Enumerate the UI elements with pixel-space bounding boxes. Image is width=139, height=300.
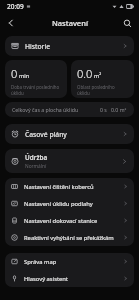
button[interactable]: Údržba — [5, 149, 134, 173]
staticText: Oblast posledního úklidu — [77, 84, 115, 96]
staticText: 0.0 — [77, 66, 93, 81]
staticText: Nastavení čištění koberců — [24, 183, 94, 191]
staticText: 0.0 m² — [111, 106, 127, 113]
staticText: Nastavení dokovací stanice — [24, 217, 98, 225]
staticText: Správa map — [24, 258, 57, 266]
staticText: Normální — [25, 163, 47, 170]
button[interactable]: Nastavení čištění koberců — [5, 178, 134, 195]
button[interactable]: Celkový čas a plocha úklidu — [5, 102, 134, 117]
button[interactable]: Historie — [5, 36, 134, 56]
staticText: Historie — [25, 42, 51, 51]
button[interactable]: Správa map — [5, 253, 134, 270]
staticText: Reaktivní vyhýbání se překážkám — [24, 234, 114, 242]
staticText: Nastavení — [52, 18, 88, 28]
staticText: m² — [94, 72, 102, 80]
staticText: 0 s — [100, 106, 107, 113]
staticText: Hlasový asistent — [24, 275, 68, 283]
staticText: Časové plány — [25, 130, 67, 139]
button[interactable]: Reaktivní vyhýbání se překážkám — [5, 229, 134, 246]
staticText: Doba trvání posledního úklidu — [11, 84, 60, 96]
button[interactable]: Search — [118, 14, 136, 32]
staticText: Nastavení úklidu podlahy — [24, 200, 93, 208]
button[interactable]: Hlasový asistent — [5, 270, 134, 287]
staticText: min — [19, 72, 30, 80]
staticText: 0 — [11, 66, 18, 81]
button[interactable]: Nastavení dokovací stanice — [5, 212, 134, 229]
button[interactable]: 0.0 — [71, 60, 134, 98]
staticText: Údržba — [25, 153, 48, 162]
staticText: 20:09 — [7, 2, 24, 11]
button[interactable]: Back — [2, 14, 20, 32]
button[interactable]: Časové plány — [5, 124, 134, 144]
button[interactable]: 0 — [5, 60, 67, 98]
button[interactable]: Nastavení úklidu podlahy — [5, 195, 134, 212]
staticText: Celkový čas a plocha úklidu — [12, 106, 79, 113]
